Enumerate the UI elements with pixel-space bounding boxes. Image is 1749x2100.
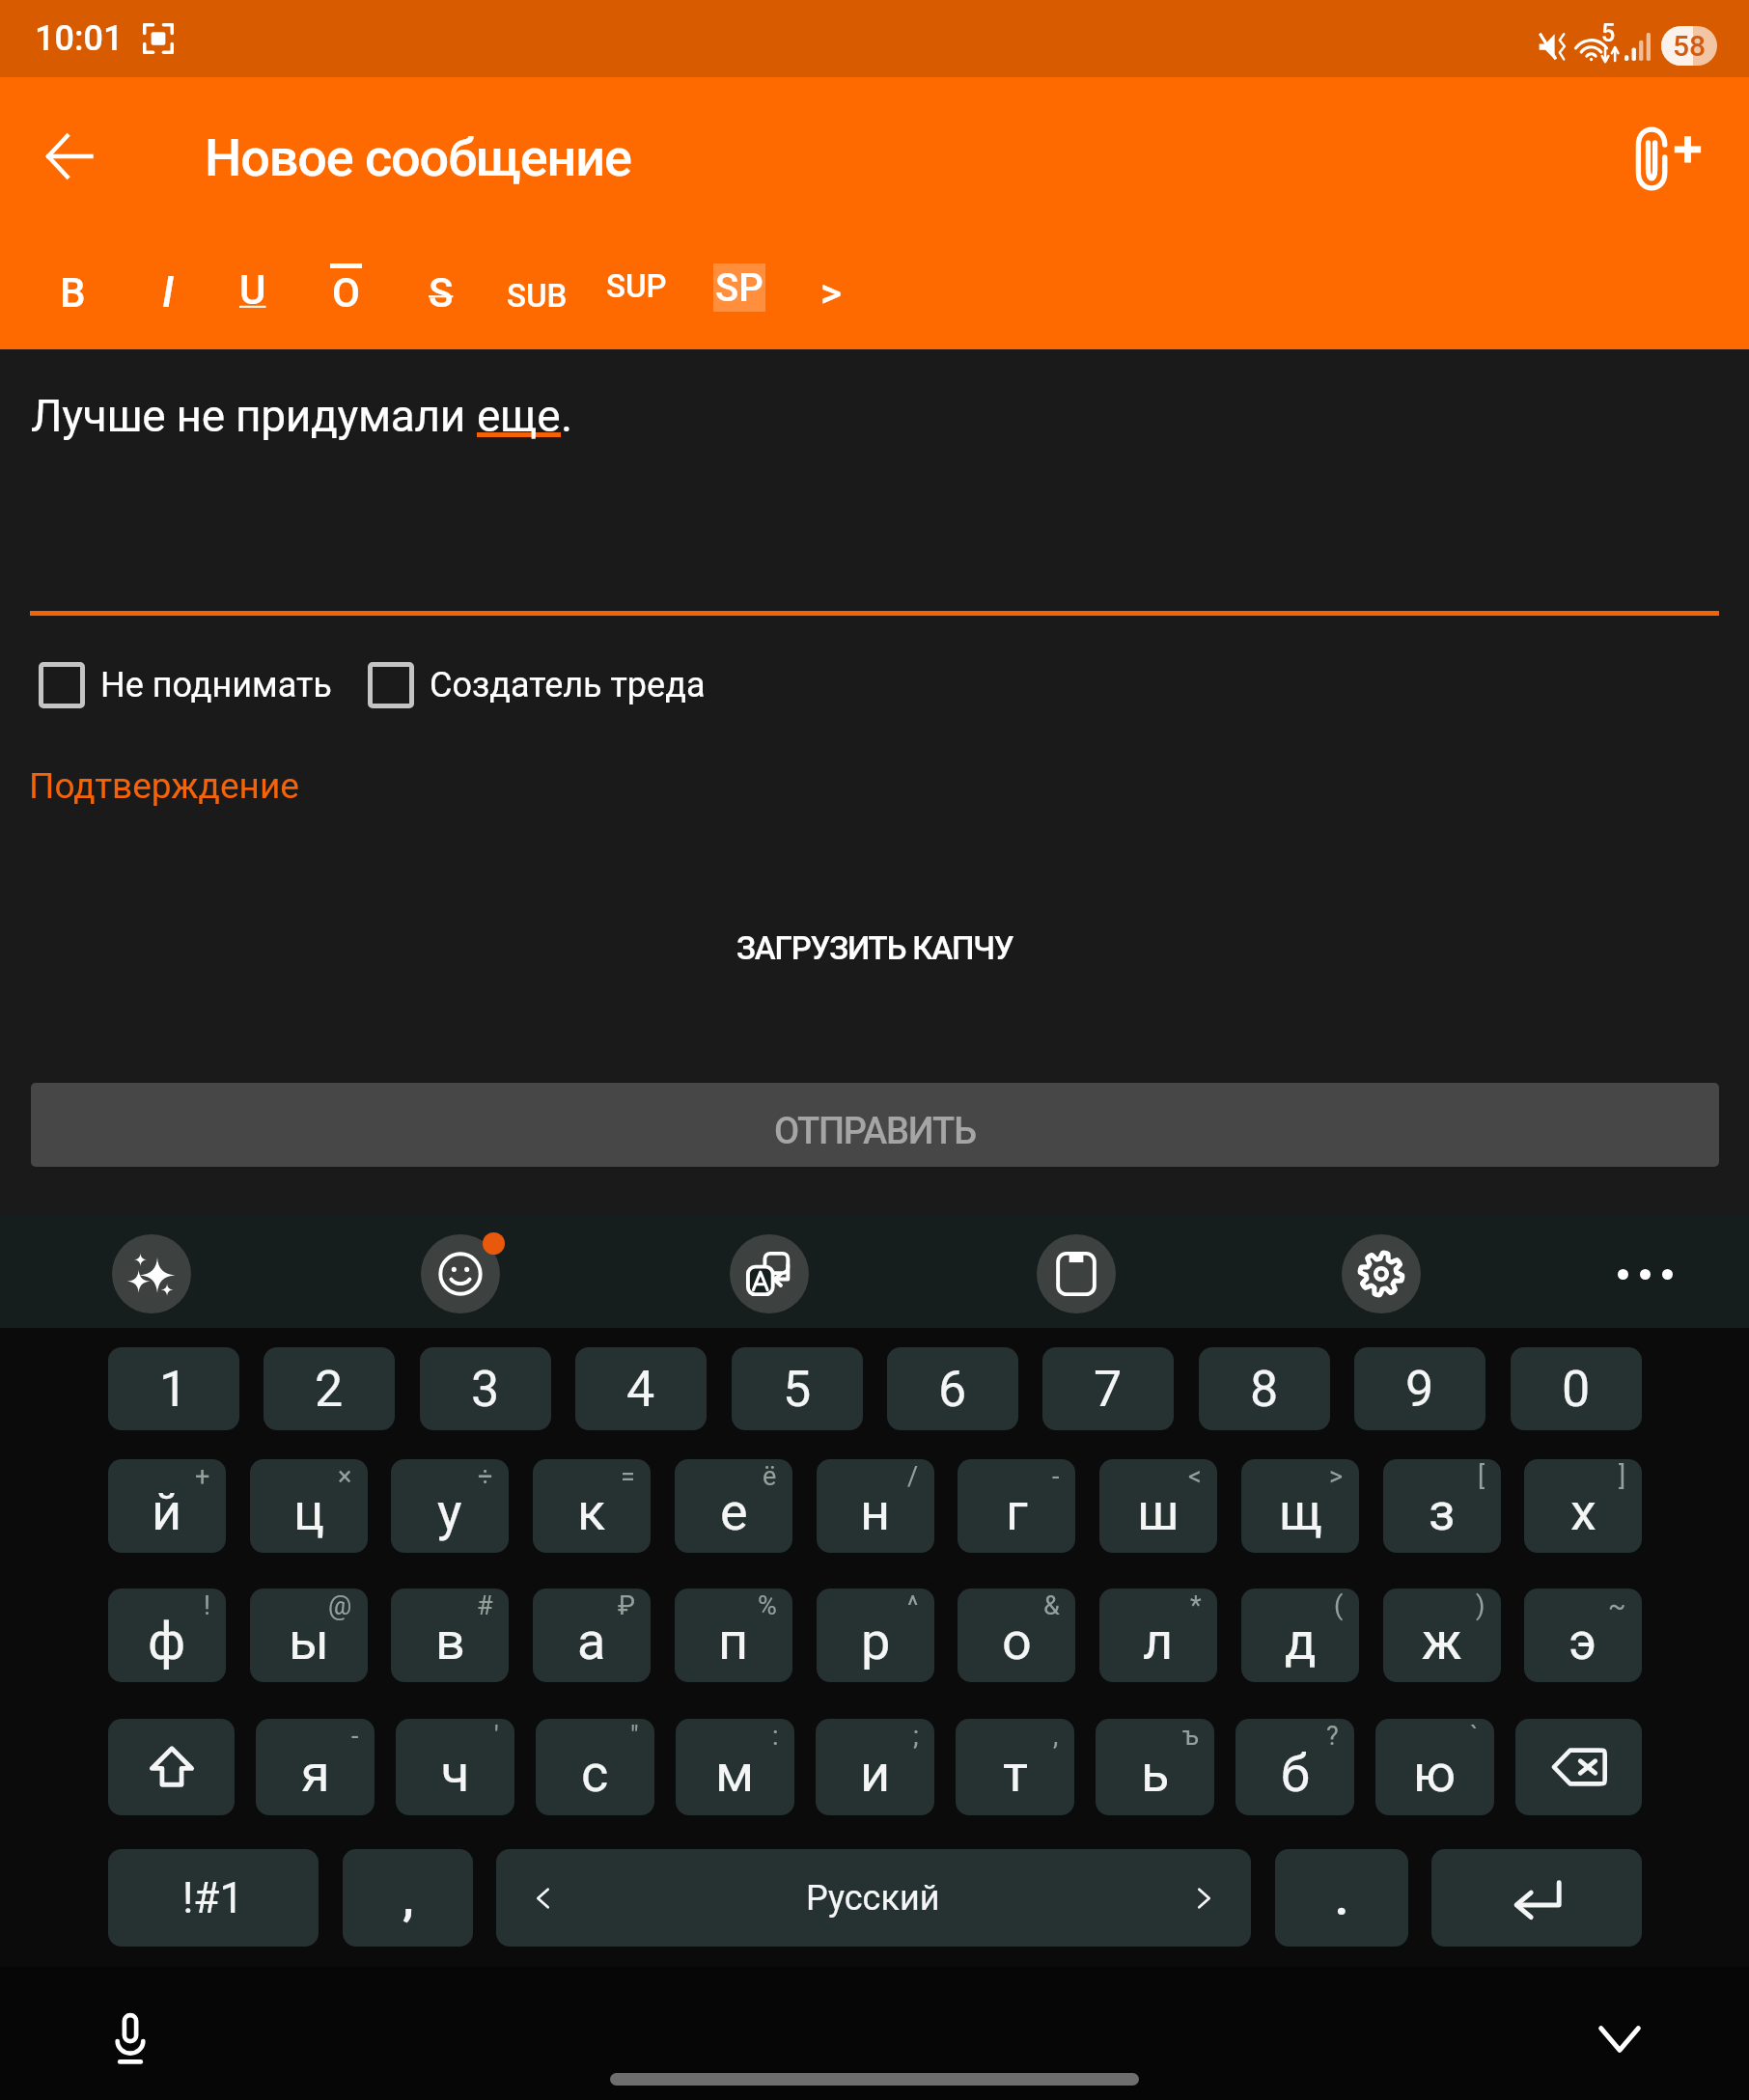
button[interactable]: Voice input xyxy=(82,1991,179,2087)
button[interactable]: щ xyxy=(1241,1459,1359,1553)
staticText: . xyxy=(1335,1871,1348,1925)
button[interactable]: Hide keyboard xyxy=(1571,1991,1668,2087)
staticText: у xyxy=(437,1481,462,1542)
button[interactable]: Attach file xyxy=(1595,85,1739,230)
button[interactable]: , xyxy=(343,1849,473,1947)
button[interactable]: 1 xyxy=(108,1347,239,1430)
button[interactable]: б xyxy=(1235,1719,1354,1815)
staticText: ш xyxy=(1137,1481,1180,1542)
staticText: ^ xyxy=(907,1590,919,1621)
button[interactable]: ю xyxy=(1375,1719,1494,1815)
button[interactable]: Подтверждение xyxy=(29,765,299,807)
button[interactable]: More options xyxy=(1605,1234,1684,1313)
button[interactable]: ч xyxy=(396,1719,514,1815)
button[interactable]: ЗАГРУЗИТЬ КАПЧУ xyxy=(0,898,1749,998)
button[interactable]: д xyxy=(1241,1589,1359,1682)
button[interactable]: Clipboard xyxy=(1037,1234,1116,1313)
button[interactable]: с xyxy=(536,1719,654,1815)
staticText: , xyxy=(403,1871,414,1925)
button[interactable]: н xyxy=(817,1459,934,1553)
staticText: ф xyxy=(148,1611,186,1672)
button[interactable]: ь xyxy=(1096,1719,1214,1815)
button[interactable]: Русский xyxy=(496,1849,1251,1947)
staticText: 5 xyxy=(1601,19,1616,47)
button[interactable]: з xyxy=(1383,1459,1501,1553)
staticText: 4 xyxy=(626,1360,655,1419)
button[interactable]: Translate xyxy=(730,1234,809,1313)
staticText: I xyxy=(162,267,175,318)
button[interactable]: р xyxy=(817,1589,934,1682)
button[interactable]: ф xyxy=(108,1589,226,1682)
button[interactable]: Создатель треда xyxy=(356,649,717,722)
staticText: + xyxy=(195,1461,210,1492)
button[interactable]: U xyxy=(210,231,295,348)
button[interactable]: !#1 xyxy=(108,1849,319,1947)
button[interactable]: SUP xyxy=(594,227,679,345)
button[interactable]: Enter xyxy=(1431,1849,1642,1947)
button[interactable]: ц xyxy=(250,1459,368,1553)
button[interactable]: ОТПРАВИТЬ xyxy=(31,1083,1719,1167)
button[interactable]: к xyxy=(533,1459,651,1553)
button[interactable]: в xyxy=(391,1589,509,1682)
button[interactable]: а xyxy=(533,1589,651,1682)
button[interactable]: 8 xyxy=(1199,1347,1330,1430)
button[interactable]: > xyxy=(789,234,874,351)
staticText: > xyxy=(1329,1461,1344,1492)
button[interactable]: м xyxy=(676,1719,794,1815)
staticText: я xyxy=(301,1743,330,1804)
button[interactable]: 0 xyxy=(1511,1347,1642,1430)
button[interactable]: й xyxy=(108,1459,226,1553)
button[interactable]: 5 xyxy=(732,1347,863,1430)
button[interactable]: Back xyxy=(0,84,142,229)
button[interactable]: 9 xyxy=(1354,1347,1485,1430)
staticText: ` xyxy=(1470,1721,1479,1752)
staticText: ( xyxy=(1334,1590,1344,1621)
button[interactable]: е xyxy=(675,1459,792,1553)
staticText: ОТПРАВИТЬ xyxy=(774,1110,976,1153)
button[interactable]: . xyxy=(1275,1849,1408,1947)
button[interactable]: 7 xyxy=(1042,1347,1174,1430)
button[interactable]: л xyxy=(1099,1589,1217,1682)
button[interactable]: SP xyxy=(713,263,765,312)
button[interactable]: ш xyxy=(1099,1459,1217,1553)
button[interactable]: ж xyxy=(1383,1589,1501,1682)
button[interactable]: 3 xyxy=(420,1347,551,1430)
button[interactable]: Keyboard settings xyxy=(1342,1234,1421,1313)
staticText: % xyxy=(758,1590,777,1621)
button[interactable]: Backspace xyxy=(1515,1719,1642,1815)
button[interactable]: п xyxy=(675,1589,792,1682)
button[interactable]: э xyxy=(1524,1589,1642,1682)
button[interactable]: I xyxy=(125,234,210,351)
button[interactable]: у xyxy=(391,1459,509,1553)
button[interactable]: O xyxy=(303,234,388,351)
staticText: 0 xyxy=(1562,1360,1591,1419)
button[interactable]: и xyxy=(816,1719,934,1815)
staticText: & xyxy=(1043,1590,1060,1621)
button[interactable]: Emoji xyxy=(421,1234,500,1313)
button[interactable]: я xyxy=(256,1719,375,1815)
staticText: з xyxy=(1429,1481,1456,1542)
button[interactable]: B xyxy=(30,234,115,351)
staticText: SUB xyxy=(507,277,568,315)
button[interactable]: 4 xyxy=(575,1347,707,1430)
button[interactable]: о xyxy=(958,1589,1075,1682)
staticText: = xyxy=(621,1461,635,1492)
button[interactable]: S xyxy=(399,234,484,351)
button[interactable]: г xyxy=(958,1459,1075,1553)
button[interactable]: ы xyxy=(250,1589,368,1682)
staticText: !#1 xyxy=(182,1873,244,1923)
staticText: # xyxy=(477,1590,493,1621)
button[interactable]: Не поднимать xyxy=(27,649,344,722)
staticText: U xyxy=(239,266,266,314)
staticText: р xyxy=(861,1611,891,1672)
button[interactable]: х xyxy=(1524,1459,1642,1553)
button[interactable]: AI suggestions xyxy=(112,1234,191,1313)
staticText: еще xyxy=(477,390,561,442)
staticText: ж xyxy=(1422,1611,1462,1672)
staticText: 7 xyxy=(1094,1360,1123,1419)
button[interactable]: 6 xyxy=(887,1347,1018,1430)
button[interactable]: SUB xyxy=(494,236,579,354)
button[interactable]: т xyxy=(956,1719,1074,1815)
button[interactable]: 2 xyxy=(264,1347,395,1430)
button[interactable]: Shift xyxy=(108,1719,235,1815)
